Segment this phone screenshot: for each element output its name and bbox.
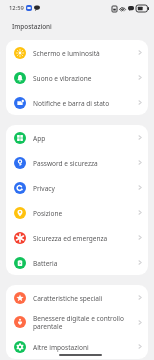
staticText: Impostazioni: [12, 22, 52, 31]
staticText: Privacy: [33, 184, 135, 192]
staticText: Posizione: [33, 209, 135, 217]
staticText: Benessere digitale e controllo parentale: [33, 314, 135, 330]
button[interactable]: Notifiche e barra di stato: [6, 90, 148, 115]
button[interactable]: Posizione: [6, 200, 148, 225]
button[interactable]: Batteria: [6, 250, 148, 275]
staticText: Notifiche e barra di stato: [33, 99, 135, 107]
staticText: 12:59: [9, 4, 24, 12]
staticText: Batteria: [33, 259, 135, 267]
button[interactable]: Schermo e luminosità: [6, 40, 148, 65]
button[interactable]: Benessere digitale e controllo parentale: [6, 310, 148, 334]
staticText: Suono e vibrazione: [33, 74, 135, 82]
staticText: Password e sicurezza: [33, 159, 135, 167]
staticText: App: [33, 134, 135, 142]
staticText: Schermo e luminosità: [33, 49, 135, 57]
button[interactable]: Password e sicurezza: [6, 150, 148, 175]
button[interactable]: Altre impostazioni: [6, 334, 148, 359]
button[interactable]: Privacy: [6, 175, 148, 200]
button[interactable]: Sicurezza ed emergenza: [6, 225, 148, 250]
staticText: Altre impostazioni: [33, 343, 135, 351]
button[interactable]: Caratteristiche speciali: [6, 285, 148, 310]
button[interactable]: Suono e vibrazione: [6, 65, 148, 90]
staticText: Sicurezza ed emergenza: [33, 234, 135, 242]
button[interactable]: App: [6, 125, 148, 150]
staticText: Caratteristiche speciali: [33, 294, 135, 302]
